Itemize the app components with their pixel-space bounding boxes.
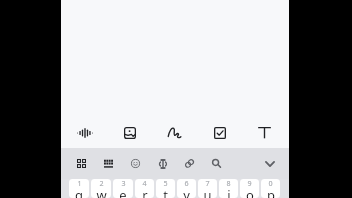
button[interactable]: 3	[113, 179, 133, 198]
button[interactable]: Text cursor	[149, 150, 176, 177]
button[interactable]: Apps	[68, 150, 95, 177]
staticText: 5	[163, 179, 168, 188]
button[interactable]: 0	[261, 179, 280, 198]
button[interactable]: Hide keyboard	[259, 153, 281, 175]
staticText: 3	[121, 179, 126, 188]
staticText: 8	[226, 179, 231, 188]
button[interactable]: Checklist	[197, 117, 242, 148]
button[interactable]: Emoji	[122, 150, 149, 177]
staticText: 7	[205, 179, 210, 188]
staticText: 4	[142, 179, 147, 188]
staticText: o	[246, 186, 254, 198]
staticText: 0	[268, 179, 273, 188]
staticText: u	[203, 186, 212, 198]
staticText: i	[227, 186, 231, 198]
button[interactable]: 2	[91, 179, 111, 198]
button[interactable]: 1	[69, 179, 89, 198]
staticText: q	[75, 186, 83, 198]
staticText: p	[267, 186, 275, 198]
button[interactable]: Clipboard	[176, 150, 203, 177]
button[interactable]: 6	[177, 179, 196, 198]
button[interactable]: Voice recording	[63, 117, 107, 148]
button[interactable]: Add image	[107, 117, 152, 148]
staticText: 6	[184, 179, 189, 188]
staticText: y	[183, 186, 190, 198]
staticText: r	[142, 186, 148, 198]
staticText: t	[163, 186, 168, 198]
button[interactable]: 4	[135, 179, 154, 198]
button[interactable]: 5	[156, 179, 175, 198]
button[interactable]: 8	[219, 179, 238, 198]
staticText: 9	[247, 179, 252, 188]
button[interactable]: Search	[203, 150, 230, 177]
button[interactable]: Keyboard layout	[95, 150, 122, 177]
button[interactable]: 9	[240, 179, 259, 198]
button[interactable]: Drawing	[152, 117, 197, 148]
staticText: 1	[77, 179, 82, 188]
button[interactable]: 7	[198, 179, 217, 198]
staticText: w	[96, 186, 107, 198]
button[interactable]: Text formatting	[242, 117, 287, 148]
staticText: 2	[99, 179, 104, 188]
staticText: e	[119, 186, 127, 198]
